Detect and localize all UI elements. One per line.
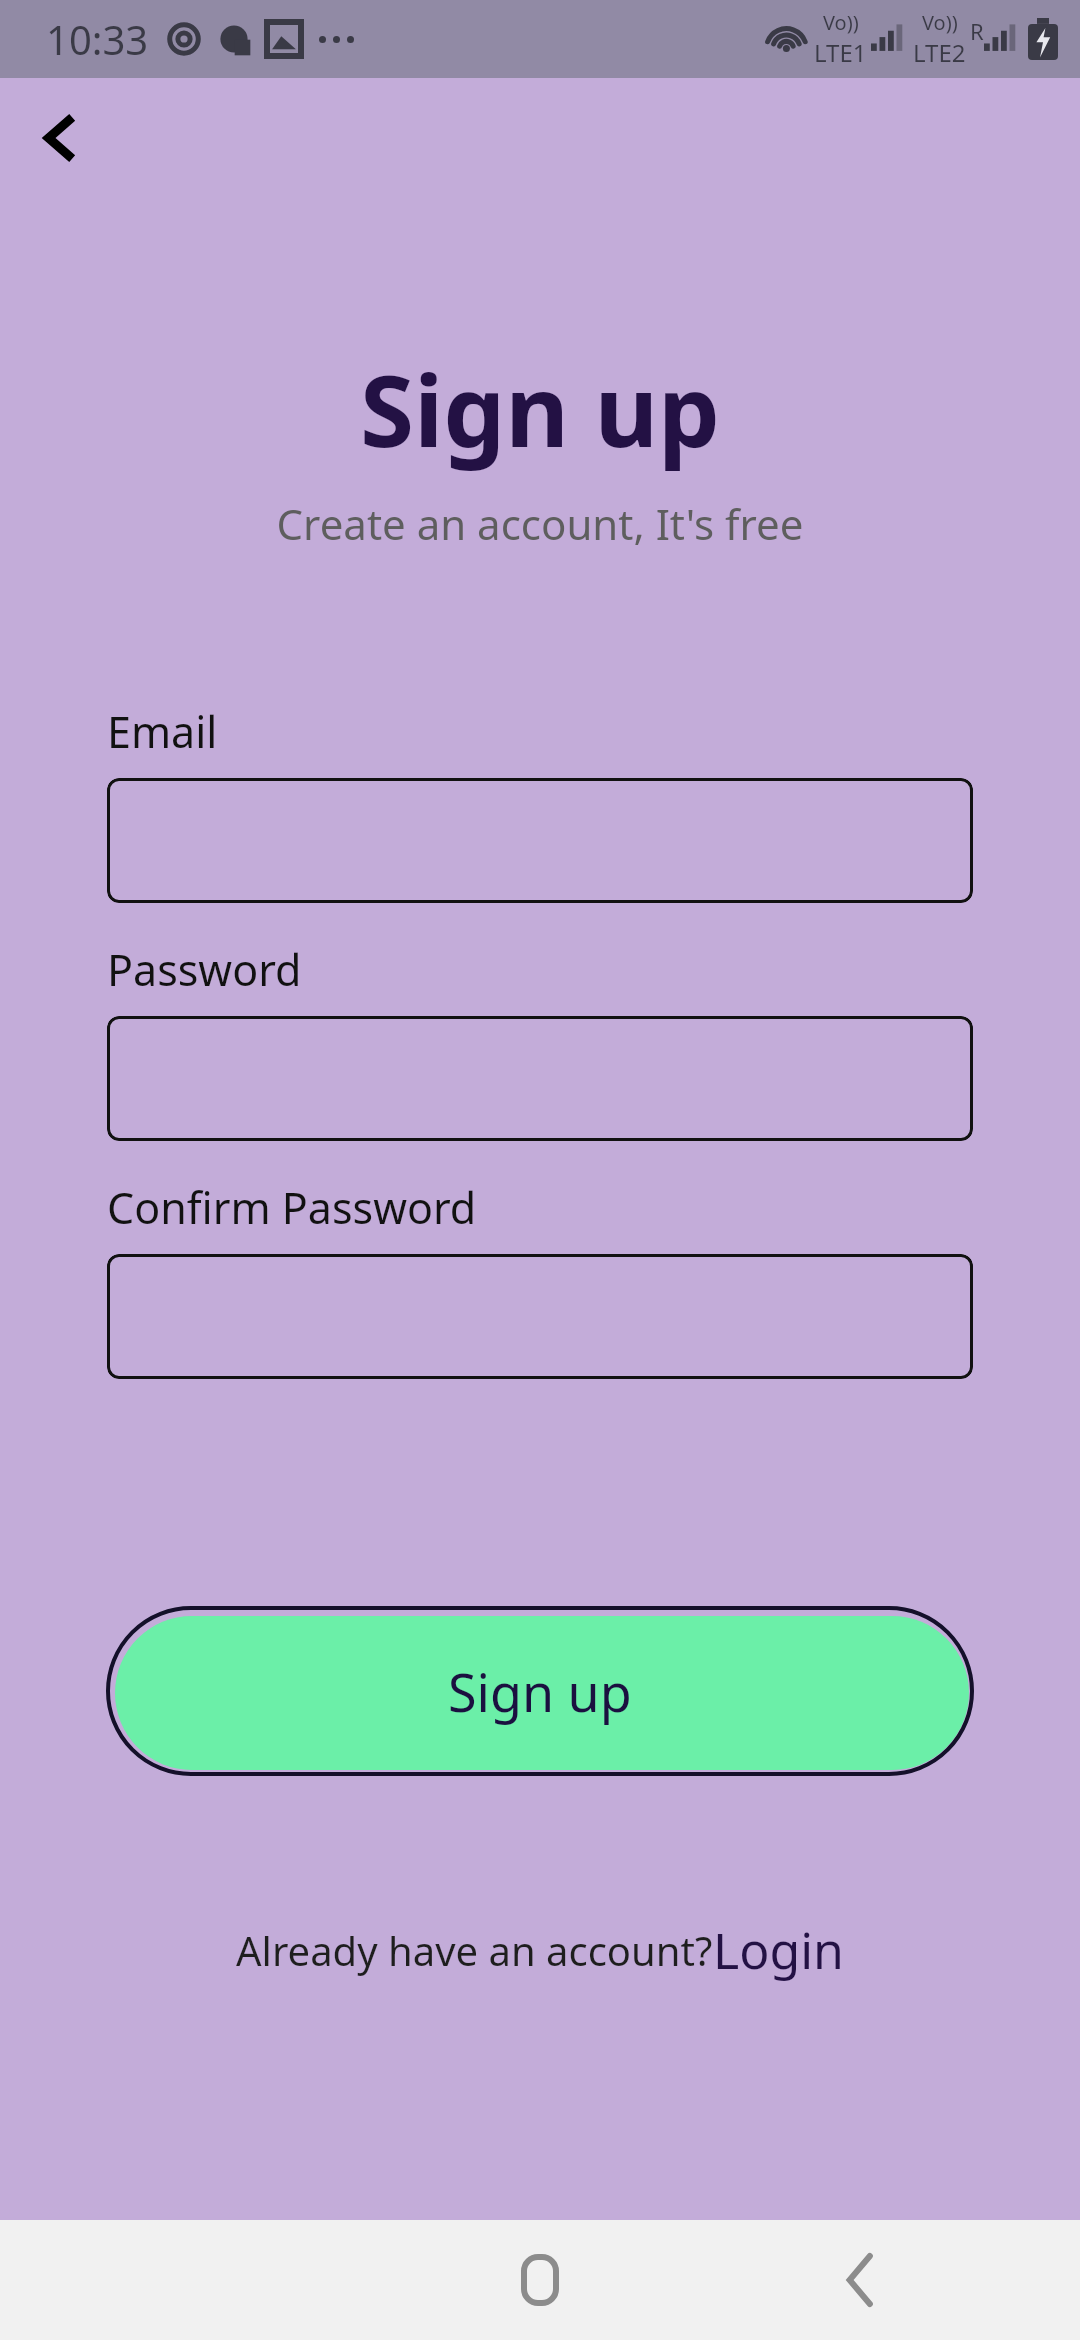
staticText: Create an account, It's free xyxy=(0,495,1080,552)
button[interactable]: Back xyxy=(18,96,102,180)
button[interactable]: Back xyxy=(810,2230,910,2330)
staticText: Vo)) xyxy=(922,9,958,36)
staticText: Email xyxy=(107,702,218,761)
button[interactable]: Sign up xyxy=(106,1606,974,1776)
staticText: Login xyxy=(713,1916,844,1984)
staticText: Already have an account? xyxy=(236,1923,713,1977)
button[interactable]: Email xyxy=(107,778,973,903)
staticText: LTE1 xyxy=(814,36,867,69)
staticText: Sign up xyxy=(448,1656,632,1727)
staticText: Vo)) xyxy=(823,9,859,36)
staticText: Password xyxy=(107,940,302,999)
staticText: 10:33 xyxy=(46,12,149,66)
button[interactable]: Home xyxy=(490,2230,590,2330)
staticText: Sign up xyxy=(0,342,1080,475)
button[interactable]: Confirm Password xyxy=(107,1254,973,1379)
button[interactable]: Password xyxy=(107,1016,973,1141)
staticText: R xyxy=(970,16,984,46)
button[interactable]: Login xyxy=(713,1916,844,1984)
staticText: LTE2 xyxy=(913,36,966,69)
staticText: Confirm Password xyxy=(107,1178,477,1237)
